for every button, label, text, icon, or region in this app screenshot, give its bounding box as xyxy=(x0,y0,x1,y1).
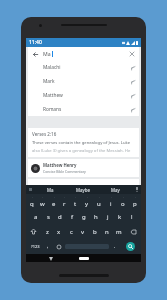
staticText: · xyxy=(99,196,100,200)
staticText: · xyxy=(123,196,124,200)
other: Insert Matthew xyxy=(129,92,136,99)
staticText: c xyxy=(70,228,73,236)
staticText: j xyxy=(107,213,109,221)
staticText: also (Luke 3) gives a genealogy of the M… xyxy=(32,148,135,154)
staticText: x xyxy=(57,228,61,236)
button[interactable]: · xyxy=(37,194,48,209)
staticText: · xyxy=(75,196,76,200)
staticText: ?123 xyxy=(31,244,40,249)
button[interactable]: ?123 xyxy=(27,241,43,252)
staticText: l xyxy=(131,213,133,221)
other: Insert Mark xyxy=(129,78,136,85)
button[interactable]: . xyxy=(110,241,120,252)
button[interactable]: Romans xyxy=(28,102,139,116)
staticText: Matthew Henry xyxy=(43,162,77,168)
other: Insert Romans xyxy=(129,106,136,113)
staticText: · xyxy=(111,196,112,200)
button[interactable]: · xyxy=(129,194,141,209)
button[interactable]: c xyxy=(65,224,77,239)
button[interactable]: b xyxy=(89,224,101,239)
button[interactable]: Clear query xyxy=(128,50,136,58)
staticText: g xyxy=(82,213,86,221)
button[interactable]: h xyxy=(90,209,102,224)
staticText: Romans xyxy=(43,106,62,113)
button[interactable]: Maybe xyxy=(66,185,99,194)
button[interactable]: l xyxy=(126,209,138,224)
button[interactable]: , xyxy=(43,241,53,252)
staticText: b xyxy=(93,228,97,236)
button[interactable]: Home xyxy=(79,257,89,260)
staticText: Malachi xyxy=(43,64,61,71)
button[interactable]: Matthew Henry xyxy=(28,159,139,177)
button[interactable]: Matthew xyxy=(28,88,139,102)
staticText: s xyxy=(47,213,50,221)
staticText: v xyxy=(81,228,85,236)
button[interactable]: Malachi xyxy=(28,60,139,74)
button[interactable]: More options xyxy=(26,185,34,194)
staticText: These verses contain the genealogy of Je… xyxy=(32,140,131,146)
button[interactable]: n xyxy=(101,224,113,239)
staticText: Verses 2:16 xyxy=(32,131,57,137)
button[interactable]: Hide keyboard xyxy=(48,256,53,261)
button[interactable]: Emoji xyxy=(53,241,64,252)
other: Insert Malachi xyxy=(129,64,136,71)
staticText: Concise Bible Commentary xyxy=(43,169,86,174)
button[interactable]: · xyxy=(81,194,93,209)
staticText: t xyxy=(74,200,77,208)
button[interactable]: · xyxy=(48,194,59,209)
staticText: . xyxy=(114,243,116,250)
button[interactable]: · xyxy=(26,194,37,209)
staticText: a xyxy=(34,213,38,221)
button[interactable]: s xyxy=(42,209,54,224)
staticText: Matthew xyxy=(43,92,63,99)
staticText: f xyxy=(71,213,74,221)
staticText: n xyxy=(105,228,109,236)
staticText: q xyxy=(30,200,34,208)
staticText: · xyxy=(135,196,136,200)
button[interactable]: Search xyxy=(126,242,135,251)
staticText: May xyxy=(111,187,120,193)
button[interactable]: j xyxy=(102,209,114,224)
button[interactable]: a xyxy=(29,209,42,224)
staticText: · xyxy=(32,196,33,200)
button[interactable]: · xyxy=(93,194,105,209)
staticText: · xyxy=(64,196,65,200)
staticText: d xyxy=(58,213,62,221)
button[interactable]: Ma xyxy=(34,185,66,194)
staticText: · xyxy=(42,196,43,200)
button[interactable]: d xyxy=(54,209,66,224)
button[interactable]: Backspace xyxy=(125,224,141,239)
staticText: i xyxy=(110,200,112,208)
button[interactable]: · xyxy=(59,194,70,209)
button[interactable]: Back xyxy=(31,50,39,58)
button[interactable]: Shift xyxy=(26,224,41,239)
button[interactable]: v xyxy=(77,224,89,239)
button[interactable]: x xyxy=(53,224,65,239)
button[interactable]: Mark xyxy=(28,74,139,88)
button[interactable]: · xyxy=(117,194,129,209)
button[interactable]: k xyxy=(114,209,126,224)
staticText: 11:40 xyxy=(29,39,42,46)
button[interactable]: May xyxy=(99,185,132,194)
staticText: Ma xyxy=(43,50,51,57)
button[interactable]: g xyxy=(78,209,90,224)
button[interactable]: z xyxy=(41,224,53,239)
button[interactable]: · xyxy=(70,194,81,209)
staticText: h xyxy=(94,213,98,221)
staticText: · xyxy=(87,196,88,200)
staticText: e xyxy=(52,200,56,208)
staticText: Ma xyxy=(47,187,54,193)
staticText: , xyxy=(47,243,49,250)
button[interactable]: Back xyxy=(28,47,139,60)
staticText: y xyxy=(85,200,89,208)
button[interactable]: f xyxy=(66,209,78,224)
staticText: m xyxy=(116,228,122,236)
staticText: Maybe xyxy=(76,187,90,193)
button[interactable]: m xyxy=(113,224,125,239)
staticText: k xyxy=(118,213,122,221)
staticText: · xyxy=(54,196,55,200)
button[interactable]: · xyxy=(105,194,117,209)
staticText: z xyxy=(46,228,49,236)
button[interactable]: Voice input xyxy=(132,185,141,194)
